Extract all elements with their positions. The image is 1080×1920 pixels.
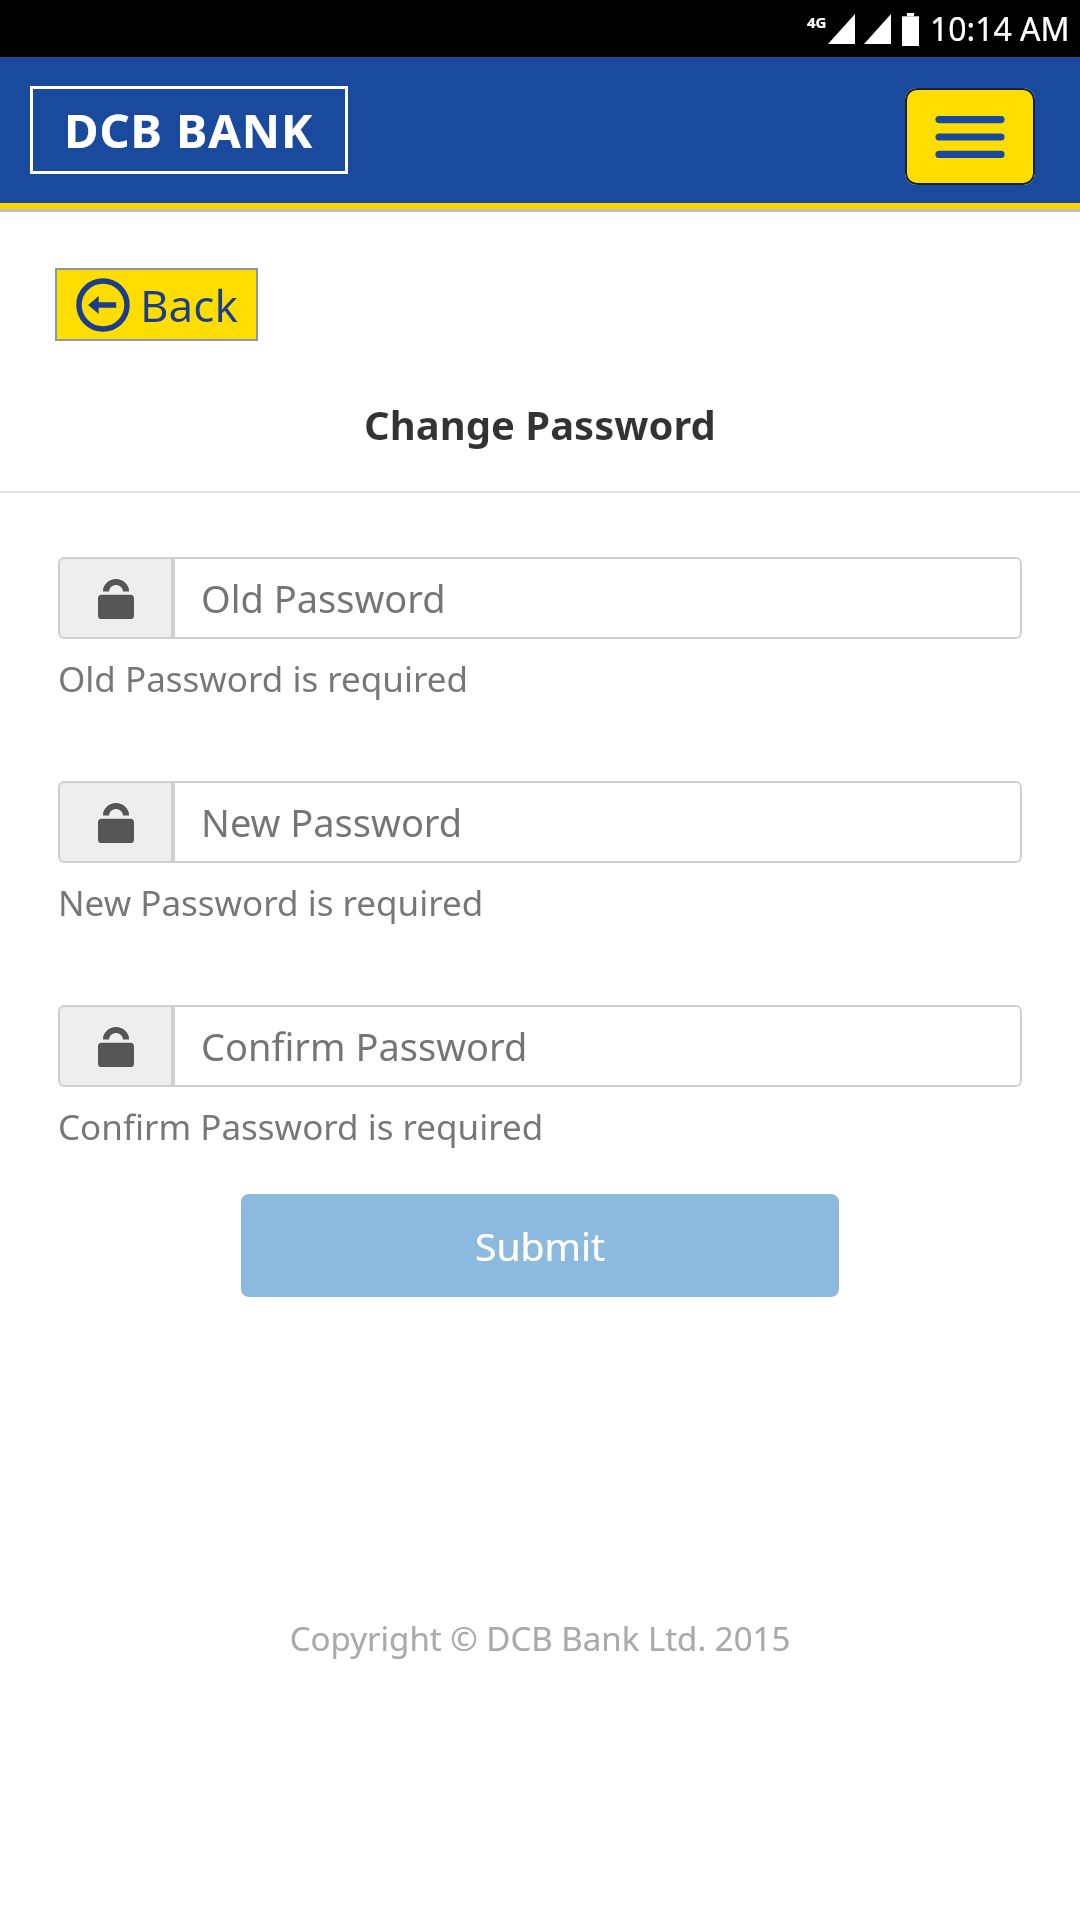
button[interactable]: Menu bbox=[905, 88, 1035, 185]
staticText: DCB BANK bbox=[64, 98, 314, 162]
staticText: Copyright © DCB Bank Ltd. 2015 bbox=[0, 1616, 1080, 1661]
staticText: Confirm Password bbox=[201, 1020, 528, 1072]
staticText: New Password is required bbox=[58, 879, 484, 927]
staticText: Confirm Password is required bbox=[58, 1103, 544, 1151]
button[interactable]: Confirm Password bbox=[58, 1005, 1022, 1087]
button[interactable]: Back bbox=[57, 270, 256, 339]
button[interactable]: Submit bbox=[241, 1194, 839, 1297]
staticText: Back bbox=[140, 275, 238, 335]
button[interactable]: Old Password bbox=[58, 557, 1022, 639]
staticText: Old Password is required bbox=[58, 655, 468, 703]
staticText: 10:14 AM bbox=[930, 7, 1070, 51]
button[interactable]: DCB BANK bbox=[33, 89, 345, 171]
staticText: 4G bbox=[807, 12, 827, 32]
staticText: Change Password bbox=[0, 397, 1080, 451]
staticText: Old Password bbox=[201, 572, 446, 624]
staticText: Submit bbox=[475, 1219, 606, 1272]
button[interactable]: New Password bbox=[58, 781, 1022, 863]
staticText: New Password bbox=[201, 796, 463, 848]
